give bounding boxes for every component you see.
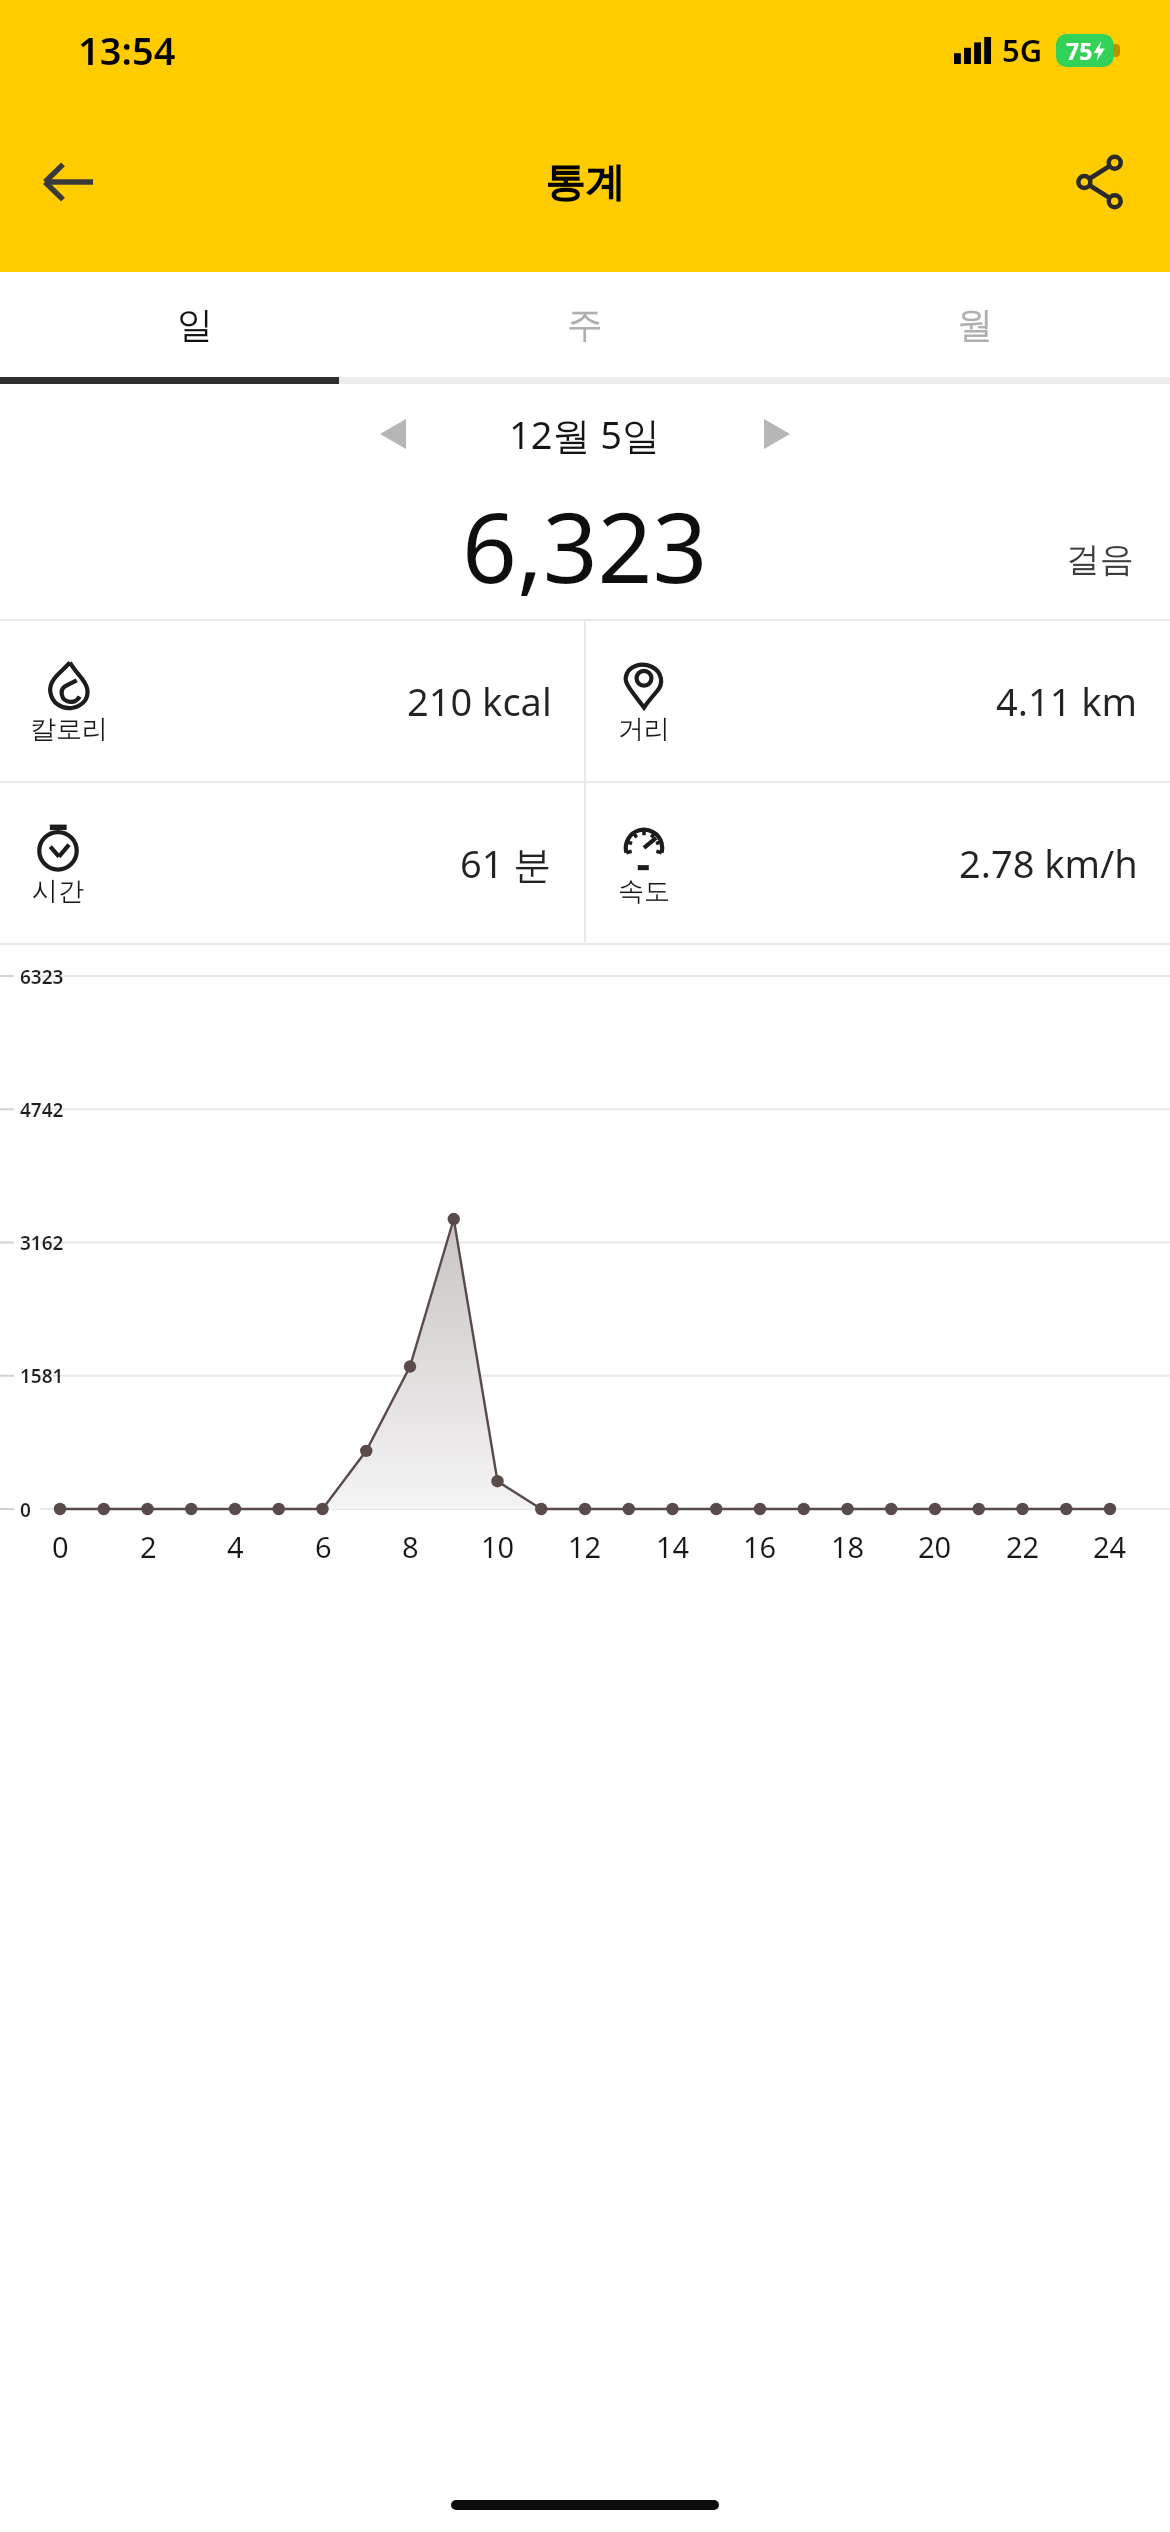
staticText: 6323 [20, 964, 64, 990]
staticText: 10 [481, 1527, 515, 1566]
staticText: 14 [656, 1527, 690, 1566]
staticText: 4 [227, 1527, 244, 1566]
button[interactable]: 일 [0, 272, 390, 377]
button[interactable]: 월 [780, 272, 1170, 377]
staticText: 210 kcal [407, 675, 552, 727]
button[interactable]: Previous day [351, 392, 435, 476]
staticText: 거리 [618, 713, 670, 746]
staticText: 칼로리 [30, 713, 108, 746]
staticText: 12 [568, 1527, 602, 1566]
staticText: 75 [1066, 35, 1093, 66]
staticText: 0 [52, 1527, 69, 1566]
staticText: 월 [957, 302, 993, 347]
staticText: 주 [567, 302, 603, 347]
staticText: 6,323 [462, 480, 708, 611]
staticText: 20 [918, 1527, 952, 1566]
staticText: 13:54 [78, 24, 176, 76]
button[interactable]: 시간 [0, 783, 584, 943]
button[interactable]: Back [20, 134, 116, 230]
staticText: 12월 5일 [509, 408, 661, 460]
staticText: 22 [1006, 1527, 1040, 1566]
staticText: 24 [1093, 1527, 1127, 1566]
staticText: 4742 [20, 1097, 64, 1123]
staticText: 속도 [618, 875, 670, 908]
staticText: 걸음 [1066, 538, 1134, 581]
staticText: 18 [831, 1527, 865, 1566]
button[interactable]: 주 [390, 272, 780, 377]
staticText: 2 [140, 1527, 157, 1566]
staticText: 0 [20, 1497, 31, 1523]
staticText: 16 [743, 1527, 777, 1566]
staticText: 61 분 [460, 837, 552, 889]
staticText: 5G [1002, 29, 1043, 71]
button[interactable]: Next day [735, 392, 819, 476]
staticText: 1581 [20, 1363, 64, 1389]
staticText: 2.78 km/h [959, 837, 1138, 889]
button[interactable]: 속도 [586, 783, 1170, 943]
button[interactable]: 칼로리 [0, 621, 584, 781]
staticText: 3162 [20, 1230, 64, 1256]
staticText: 4.11 km [996, 675, 1138, 727]
button[interactable]: Share [1052, 134, 1148, 230]
staticText: 통계 [545, 157, 625, 207]
staticText: 일 [177, 302, 213, 347]
staticText: 8 [402, 1527, 419, 1566]
button[interactable]: 거리 [586, 621, 1170, 781]
staticText: 6 [315, 1527, 332, 1566]
staticText: 시간 [32, 875, 84, 908]
